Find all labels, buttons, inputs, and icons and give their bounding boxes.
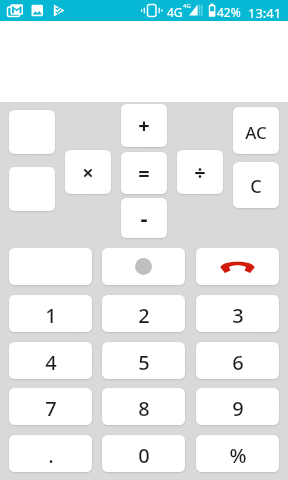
staticText: . bbox=[48, 442, 54, 469]
button[interactable]: 0 bbox=[102, 435, 185, 472]
button[interactable]: Memory bbox=[9, 167, 55, 211]
button[interactable]: Dial bbox=[102, 248, 185, 285]
staticText: 9 bbox=[232, 395, 244, 422]
button[interactable]: 9 bbox=[196, 388, 279, 425]
staticText: 7 bbox=[45, 395, 57, 422]
staticText: ÷ bbox=[194, 159, 206, 186]
staticText: + bbox=[138, 112, 150, 139]
button[interactable]: - bbox=[121, 198, 167, 238]
button[interactable]: × bbox=[65, 150, 111, 194]
button[interactable]: 5 bbox=[102, 342, 185, 379]
staticText: 0 bbox=[138, 442, 150, 469]
staticText: 6 bbox=[232, 349, 244, 376]
staticText: - bbox=[140, 202, 148, 232]
button[interactable]: 1 bbox=[9, 295, 92, 332]
button[interactable]: = bbox=[121, 152, 167, 194]
button[interactable]: 3 bbox=[196, 295, 279, 332]
staticText: 5 bbox=[138, 349, 150, 376]
staticText: 4G bbox=[167, 4, 183, 20]
staticText: 3 bbox=[232, 302, 244, 329]
button[interactable]: 6 bbox=[196, 342, 279, 379]
button[interactable]: 4 bbox=[9, 342, 92, 379]
staticText: 4 bbox=[45, 349, 57, 376]
staticText: 4G bbox=[183, 2, 191, 10]
staticText: × bbox=[82, 159, 94, 186]
button[interactable]: ÷ bbox=[177, 150, 223, 194]
button[interactable]: End call bbox=[196, 248, 279, 285]
button[interactable]: 8 bbox=[102, 388, 185, 425]
button[interactable]: % bbox=[196, 435, 279, 472]
staticText: 8 bbox=[138, 395, 150, 422]
staticText: % bbox=[229, 442, 247, 469]
button[interactable]: AC bbox=[233, 107, 279, 154]
button[interactable]: Memory bbox=[9, 110, 55, 154]
button[interactable]: 2 bbox=[102, 295, 185, 332]
button[interactable]: + bbox=[121, 104, 167, 147]
staticText: 1 bbox=[45, 302, 57, 329]
button[interactable]: C bbox=[233, 162, 279, 208]
button[interactable]: . bbox=[9, 435, 92, 472]
staticText: AC bbox=[245, 121, 267, 144]
staticText: 13:41 bbox=[248, 4, 282, 22]
staticText: C bbox=[250, 174, 262, 199]
button[interactable]: 7 bbox=[9, 388, 92, 425]
staticText: 42% bbox=[217, 4, 241, 20]
staticText: = bbox=[138, 160, 150, 187]
staticText: 2 bbox=[138, 302, 150, 329]
button[interactable]: Call log bbox=[9, 248, 92, 285]
